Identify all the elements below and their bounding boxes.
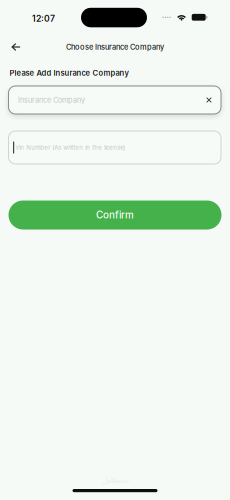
staticText: Choose Insurance Company xyxy=(66,43,164,52)
staticText: Confirm xyxy=(96,209,134,221)
staticText: Insurance Company xyxy=(18,96,85,104)
staticText: Vin Number (As written in the license) xyxy=(15,144,125,151)
button[interactable]: Confirm xyxy=(8,200,221,229)
button[interactable]: Back xyxy=(6,38,26,56)
staticText: مستقبل xyxy=(101,470,129,489)
staticText: 12:07 xyxy=(32,13,55,24)
button[interactable]: Vin Number (As written in the license) xyxy=(8,131,221,164)
button[interactable]: Insurance Company xyxy=(8,86,221,114)
staticText: Please Add Insurance Company xyxy=(9,68,128,78)
